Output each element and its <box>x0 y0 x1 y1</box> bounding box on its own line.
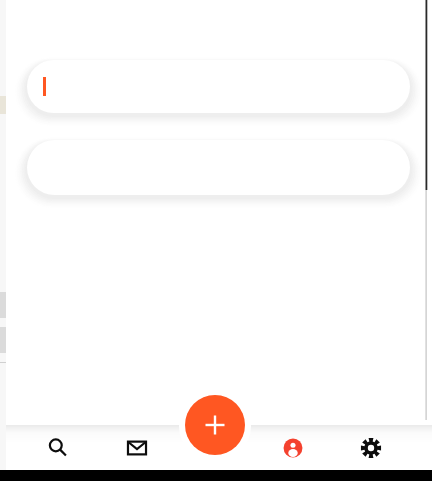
button[interactable]: Account <box>278 433 308 463</box>
button[interactable]: Settings <box>356 433 386 463</box>
button[interactable]: Mail <box>122 433 152 463</box>
button[interactable]: Add <box>185 395 245 455</box>
button[interactable]: Search <box>43 433 73 463</box>
button[interactable] <box>27 60 410 113</box>
